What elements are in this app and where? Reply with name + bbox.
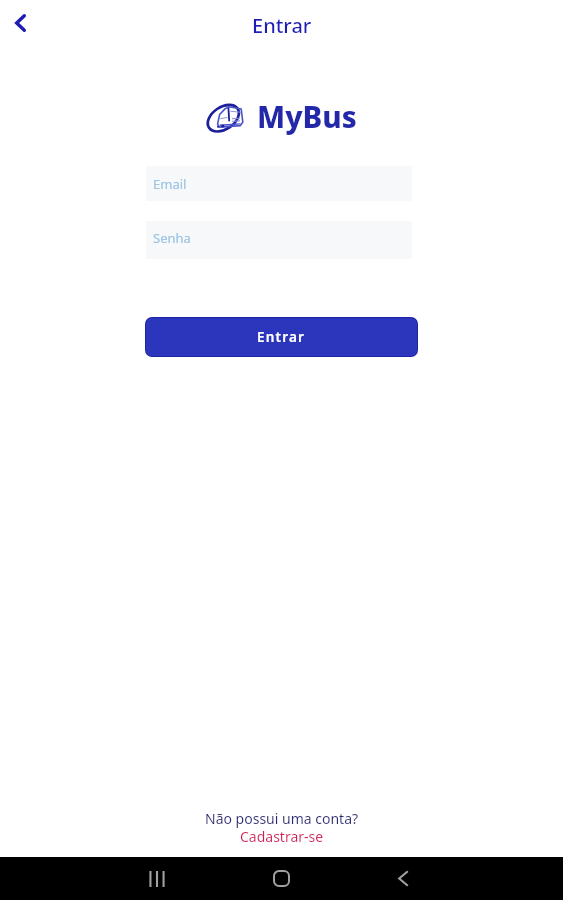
button[interactable]: Voltar [3,6,37,40]
button[interactable]: Recentes [133,857,181,900]
button[interactable]: Senha [146,221,412,259]
button[interactable]: Cadastrar-se [230,823,334,850]
staticText: Email [153,175,187,193]
staticText: MyBus [257,96,357,136]
staticText: Entrar [257,328,306,346]
staticText: Entrar [252,12,312,39]
button[interactable]: Email [146,166,412,201]
button[interactable]: Voltar [379,857,427,900]
staticText: Cadastrar-se [240,827,324,846]
staticText: Senha [153,229,191,247]
button[interactable]: Início [257,857,305,900]
staticText: Não possui uma conta? [205,809,359,828]
button[interactable]: Entrar [146,318,417,356]
